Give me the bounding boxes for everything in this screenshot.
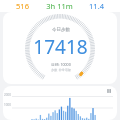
staticText: 2000: [4, 93, 11, 97]
button[interactable]: 11.4: [89, 1, 104, 11]
staticText: 今日步數: [52, 27, 70, 33]
staticText: 步數 非常活躍: [51, 68, 71, 72]
staticText: 17418: [33, 34, 88, 60]
button[interactable]: 516: [0, 0, 120, 12]
button[interactable]: 今日步數: [3, 12, 117, 84]
button[interactable]: 516: [16, 1, 29, 11]
staticText: 1000: [4, 103, 11, 107]
button[interactable]: Pause: [3, 86, 117, 120]
staticText: 3h 11m: [46, 1, 73, 11]
button[interactable]: 3h 11m: [46, 1, 73, 11]
staticText: 目標: 10000: [51, 62, 71, 67]
staticText: 516: [16, 1, 29, 11]
staticText: 11.4: [89, 1, 104, 11]
button[interactable]: Pause: [105, 87, 113, 95]
